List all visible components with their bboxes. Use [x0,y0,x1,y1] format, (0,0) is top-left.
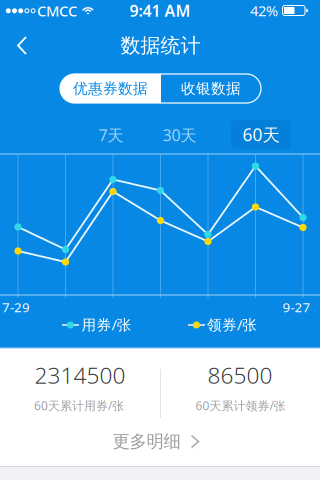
staticText: 7-29 [2,298,30,316]
staticText: 60天 [242,123,279,146]
staticText: 60天累计用券/张 [34,397,124,413]
staticText: 数据统计 [120,33,200,58]
button[interactable]: Back [0,27,44,63]
button[interactable]: 30天 [152,121,206,148]
staticText: 7天 [98,124,123,146]
button[interactable]: 60天 [231,120,291,149]
button[interactable]: 收银数据 [161,74,261,103]
staticText: 用券/张 [81,315,131,334]
staticText: 领券/张 [207,315,257,334]
button[interactable]: 7天 [84,121,138,148]
staticText: 2314500 [34,360,125,390]
staticText: 9:41 AM [129,0,190,21]
staticText: 86500 [207,360,272,390]
staticText: 60天累计领券/张 [195,397,285,413]
button[interactable]: 更多明细 [90,426,222,457]
staticText: 收银数据 [181,79,241,97]
staticText: 30天 [162,124,196,146]
button[interactable]: 优惠券数据 [60,74,161,103]
staticText: 42% [250,1,278,20]
staticText: CMCC [37,1,77,21]
staticText: 优惠券数据 [73,79,148,97]
staticText: 更多明细 [112,431,180,452]
staticText: 9-27 [282,298,310,316]
